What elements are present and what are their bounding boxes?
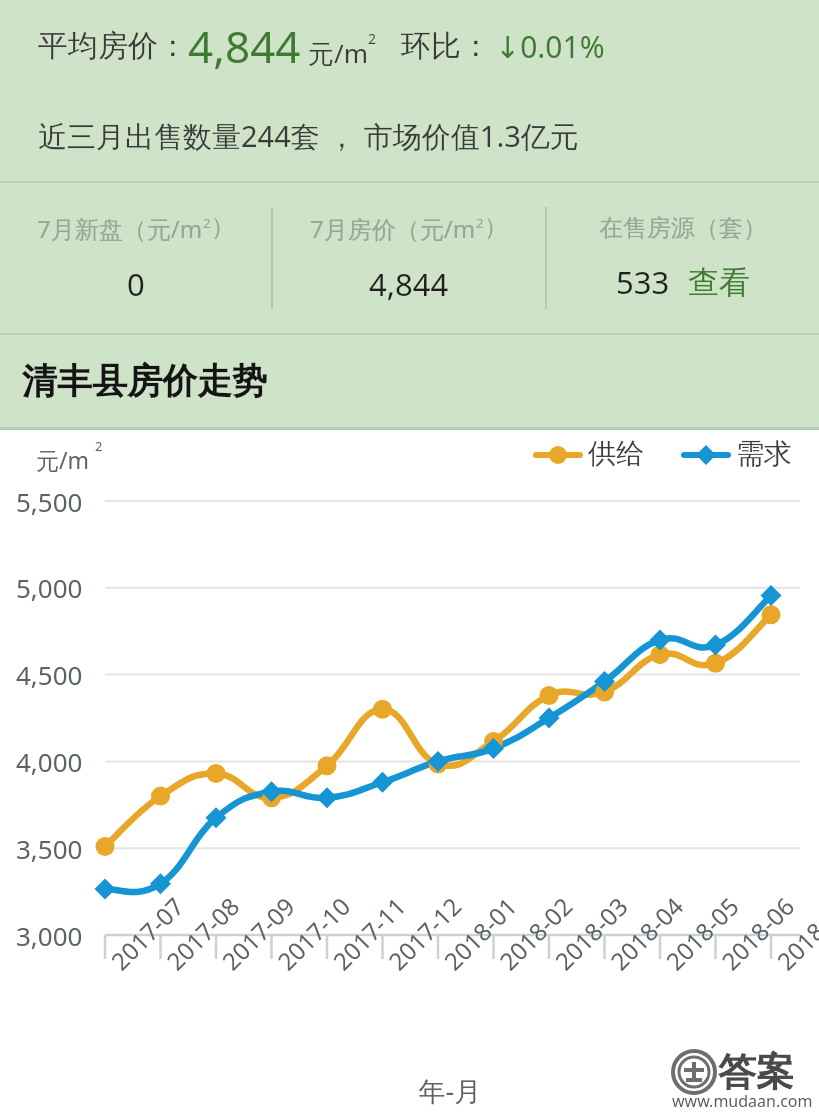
- staticText: 2: [203, 214, 211, 232]
- staticText: 2: [368, 29, 377, 48]
- staticText: 元/m: [308, 35, 368, 66]
- staticText: ↓0.01%: [495, 26, 605, 67]
- staticText: 清丰县房价走势: [22, 359, 267, 403]
- staticText: ）: [211, 212, 235, 242]
- staticText: 2: [476, 214, 484, 232]
- button[interactable]: 在售房源（套）: [547, 183, 819, 333]
- staticText: 环比：: [401, 27, 491, 65]
- button[interactable]: 7月新盘（元/m: [0, 183, 271, 333]
- button[interactable]: 7月房价（元/m: [273, 183, 545, 333]
- staticText: 在售房源（套）: [599, 213, 767, 243]
- staticText: ）: [484, 212, 508, 242]
- staticText: 查看: [688, 263, 750, 302]
- staticText: 533: [616, 261, 670, 303]
- staticText: 近三月出售数量244套 ， 市场价值1.3亿元: [38, 116, 579, 156]
- staticText: 7月新盘（元/m: [37, 212, 203, 245]
- staticText: 4,844: [369, 263, 449, 305]
- staticText: 0: [127, 263, 145, 305]
- staticText: 4,844: [188, 16, 301, 76]
- staticText: 平均房价：: [38, 27, 188, 65]
- staticText: 7月房价（元/m: [310, 212, 476, 245]
